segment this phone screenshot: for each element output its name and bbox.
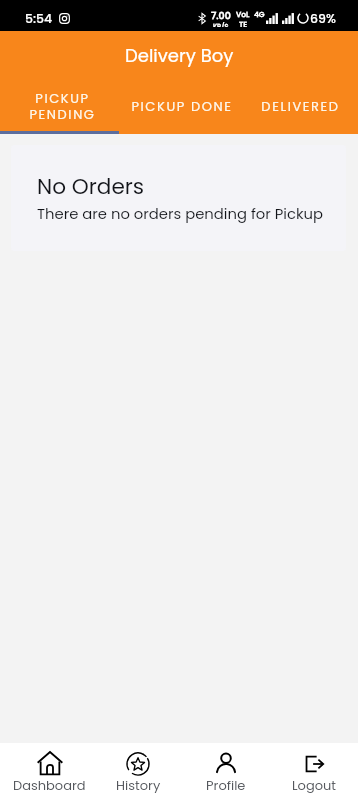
button[interactable]: History xyxy=(94,743,182,800)
staticText: PICKUP PENDING xyxy=(29,89,96,124)
staticText: Profile xyxy=(206,776,246,794)
staticText: 4G xyxy=(254,9,265,19)
button[interactable]: Profile xyxy=(182,743,270,800)
staticText: No Orders xyxy=(37,171,145,201)
staticText: There are no orders pending for Pickup xyxy=(37,203,323,224)
staticText: Logout xyxy=(292,776,337,794)
button[interactable]: No Orders xyxy=(11,145,346,251)
staticText: TE xyxy=(239,19,248,27)
staticText: PICKUP DONE xyxy=(131,97,233,115)
staticText: KB/S xyxy=(213,22,229,27)
staticText: DELIVERED xyxy=(261,97,340,115)
staticText: Dashboard xyxy=(13,776,86,794)
staticText: 5:54 xyxy=(25,10,53,27)
staticText: VoL xyxy=(236,9,250,19)
button[interactable]: PICKUP DONE xyxy=(120,80,239,134)
staticText: History xyxy=(116,776,161,794)
staticText: Delivery Boy xyxy=(125,43,234,68)
button[interactable]: DELIVERED xyxy=(239,80,358,134)
button[interactable]: Logout xyxy=(270,743,358,800)
button[interactable]: Dashboard xyxy=(5,743,94,800)
button[interactable]: PICKUP PENDING xyxy=(0,80,120,134)
staticText: 7.00 xyxy=(211,9,231,22)
staticText: 69% xyxy=(310,10,336,27)
